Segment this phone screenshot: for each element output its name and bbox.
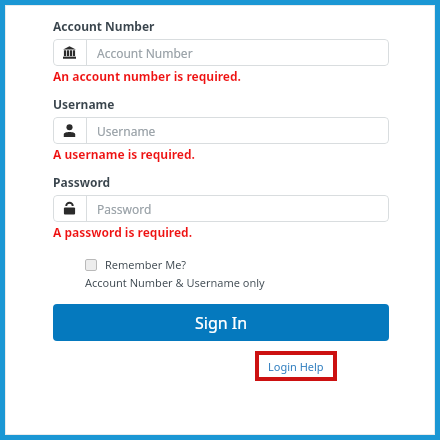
other: Username [63, 124, 76, 137]
staticText: Account Number & Username only [85, 275, 265, 290]
other: Password [63, 202, 76, 215]
button[interactable]: Remember Me? [85, 257, 187, 272]
staticText: Login Help [268, 359, 324, 374]
staticText: Username [97, 123, 156, 139]
staticText: A username is required. [53, 146, 195, 162]
staticText: Account Number [53, 18, 155, 34]
staticText: Password [97, 201, 152, 217]
button[interactable]: Password [53, 195, 389, 222]
staticText: A password is required. [53, 224, 193, 240]
staticText: Username [53, 96, 115, 112]
staticText: Remember Me? [105, 257, 187, 272]
staticText: An account number is required. [53, 68, 241, 84]
staticText: Sign In [195, 312, 248, 334]
button[interactable]: Account number [53, 39, 389, 66]
button[interactable]: Username [53, 117, 389, 144]
button[interactable]: Sign In [53, 304, 389, 341]
button[interactable]: Login Help [255, 351, 337, 381]
staticText: Password [53, 174, 111, 190]
staticText: Account Number [97, 45, 193, 61]
other: Account number [63, 46, 76, 59]
